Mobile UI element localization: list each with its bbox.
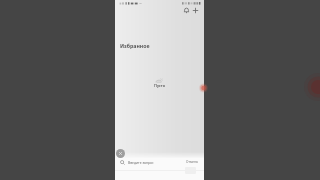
- button[interactable]: Close: [116, 149, 125, 158]
- button[interactable]: Add: [191, 6, 200, 15]
- staticText: Избранное: [120, 42, 150, 49]
- button[interactable]: Notifications: [182, 6, 191, 15]
- staticText: Введите запрос: [128, 160, 154, 165]
- staticText: Пусто: [154, 83, 165, 88]
- button[interactable]: Введите запрос: [120, 157, 198, 167]
- button[interactable]: Отмена: [186, 160, 198, 164]
